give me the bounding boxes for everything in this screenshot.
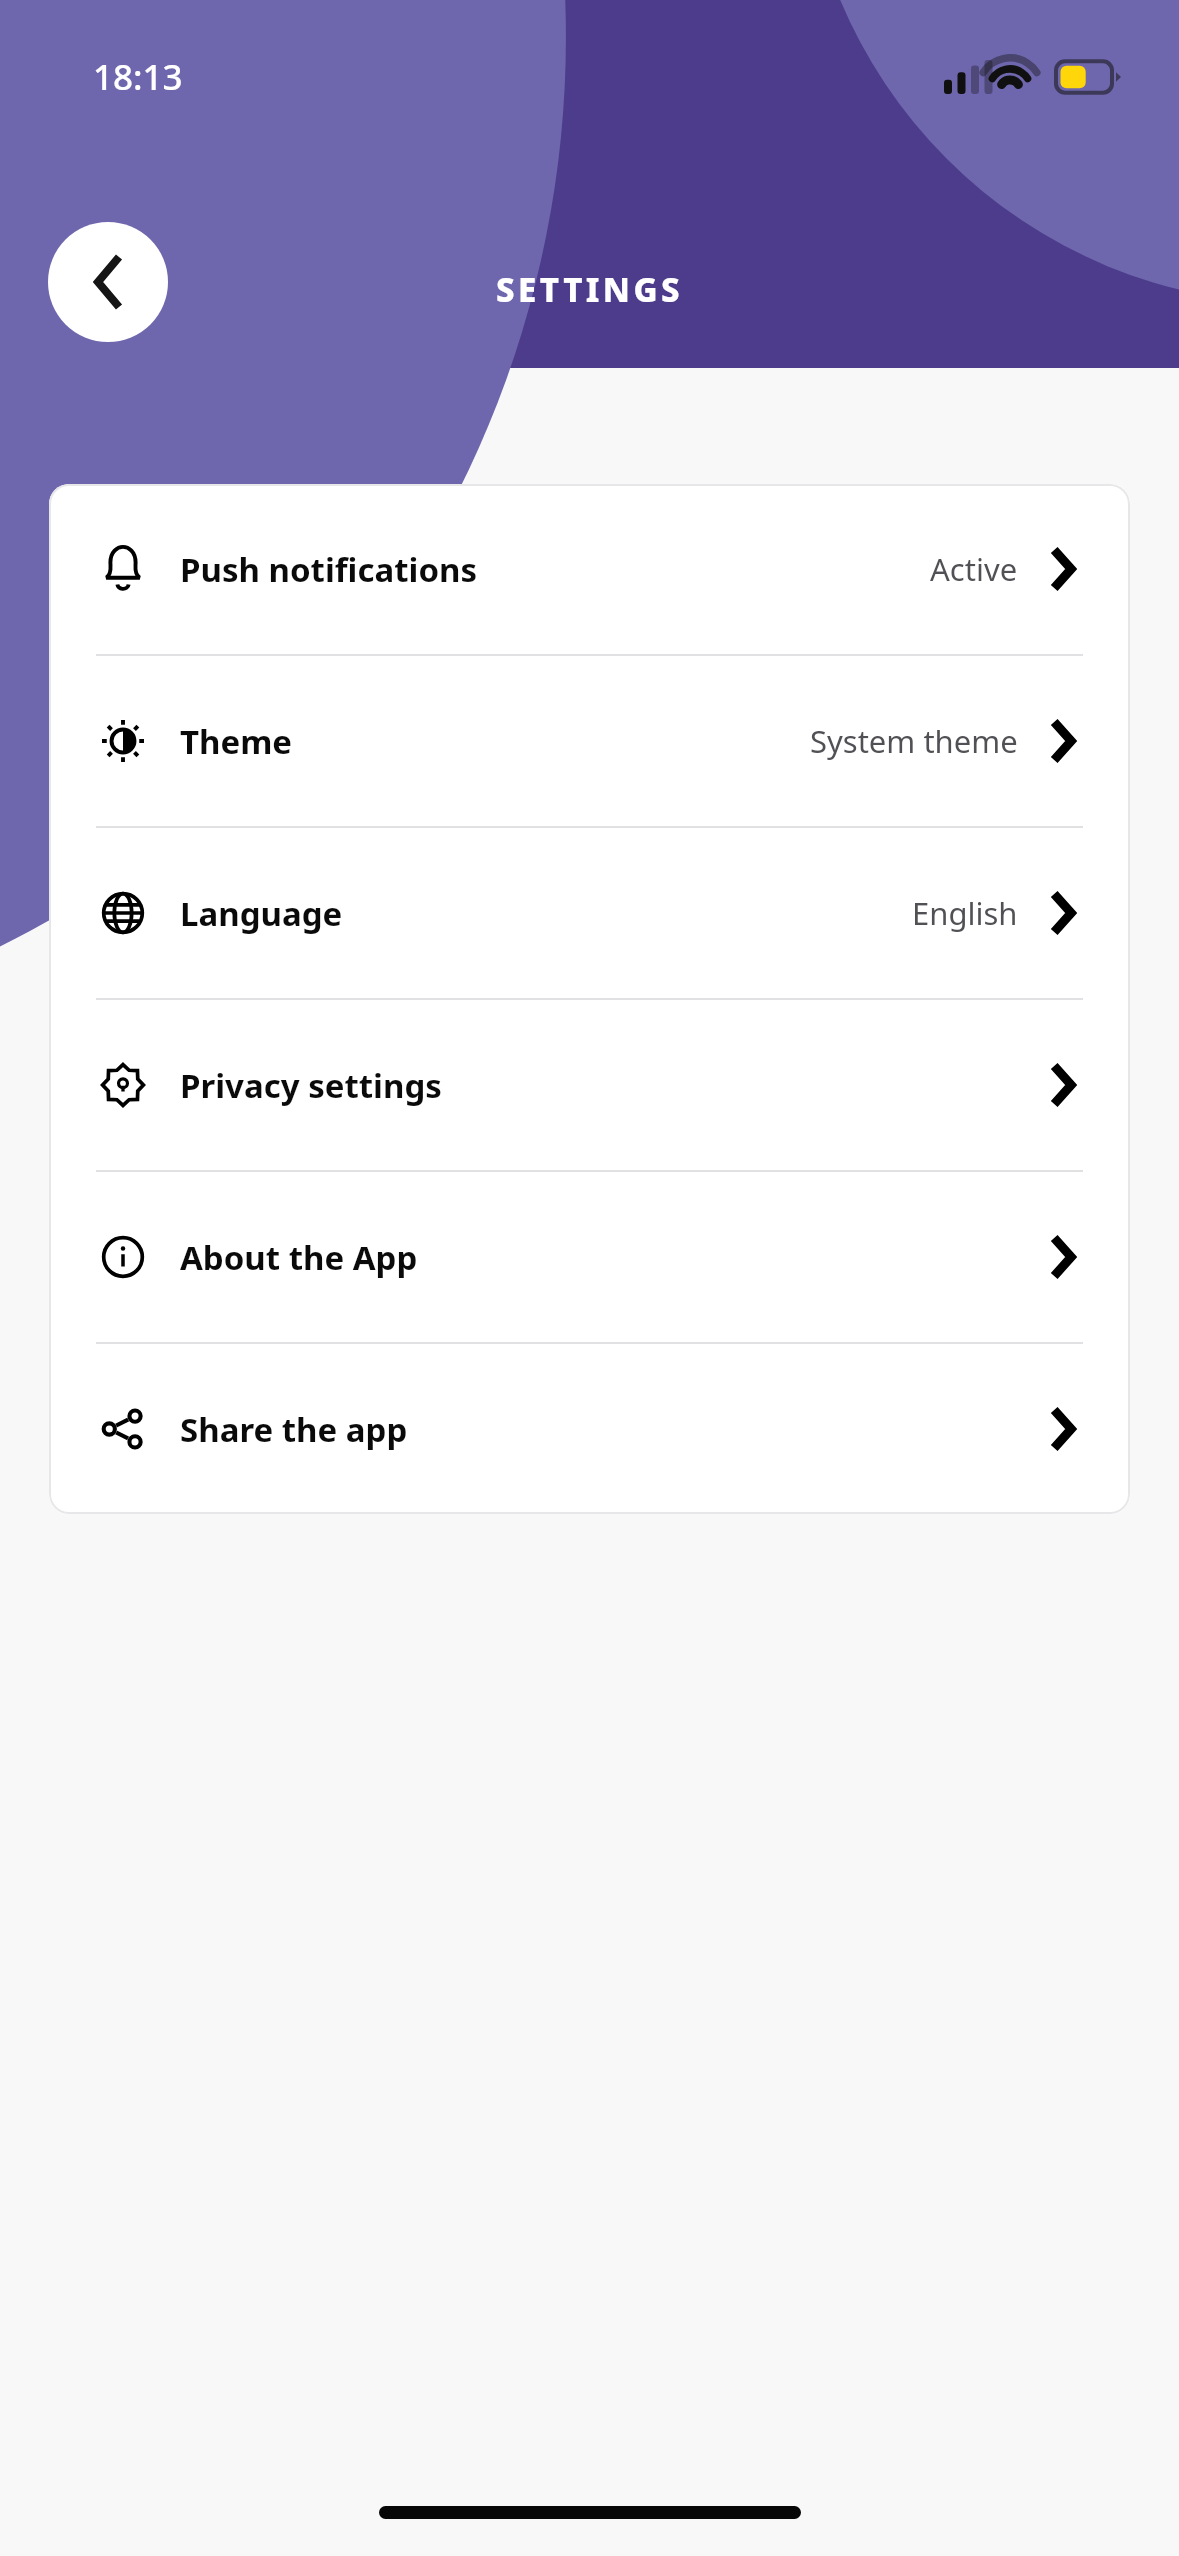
button[interactable]: Privacy settings: [49, 1000, 1130, 1170]
staticText: Language: [180, 891, 343, 936]
button[interactable]: Language: [49, 828, 1130, 998]
staticText: English: [912, 892, 1018, 934]
button[interactable]: Back: [48, 222, 168, 342]
staticText: System theme: [810, 720, 1018, 762]
button[interactable]: Push notifications: [49, 484, 1130, 654]
staticText: Privacy settings: [180, 1063, 442, 1108]
staticText: Theme: [180, 719, 293, 764]
staticText: SETTINGS: [496, 267, 683, 312]
staticText: About the App: [180, 1235, 418, 1280]
staticText: Push notifications: [180, 547, 478, 592]
button[interactable]: Share the app: [49, 1344, 1130, 1514]
staticText: Active: [930, 548, 1018, 590]
button[interactable]: Theme: [49, 656, 1130, 826]
button[interactable]: About the App: [49, 1172, 1130, 1342]
staticText: 18:13: [93, 53, 183, 101]
staticText: Share the app: [180, 1407, 408, 1452]
